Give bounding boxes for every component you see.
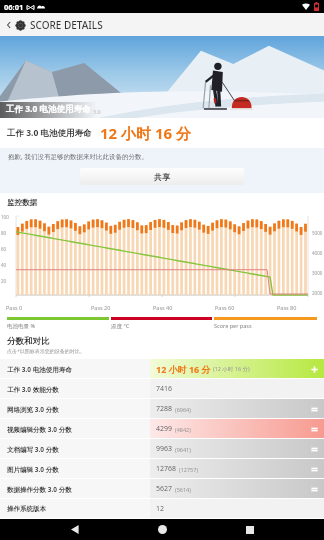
staticText: 点击+以图标表示您的设备的对比。 <box>7 348 85 355</box>
staticText: 4299 <box>156 424 173 434</box>
staticText: (6964) <box>175 406 191 413</box>
staticText: 12 <box>156 504 165 514</box>
staticText: 共享 <box>154 172 170 182</box>
staticText: 工作 3.0 电池使用寿命 <box>7 365 72 374</box>
staticText: 温度 °C <box>111 322 130 330</box>
staticText: (4842) <box>175 426 191 433</box>
button[interactable]: Compare <box>310 445 319 454</box>
staticText: 20 <box>1 278 7 284</box>
button[interactable]: 文档编写 3.0 分数 <box>0 439 324 459</box>
staticText: 分数和对比 <box>7 336 50 347</box>
button[interactable]: Compare <box>310 485 319 494</box>
staticText: 文档编写 3.0 分数 <box>7 445 59 454</box>
staticText: 100 <box>1 214 9 220</box>
staticText: Pass 20 <box>91 304 111 311</box>
button[interactable]: 图片编辑 3.0 分数 <box>0 459 324 479</box>
staticText: Pass 0 <box>6 304 23 311</box>
staticText: 40 <box>1 262 7 268</box>
button[interactable]: Back <box>3 19 15 31</box>
staticText: 网络浏览 3.0 分数 <box>7 405 59 414</box>
staticText: 12 小时 16 分 <box>100 123 192 143</box>
staticText: Pass 60 <box>215 304 235 311</box>
staticText: 7288 <box>156 404 173 414</box>
button[interactable]: 工作 3.0 电池使用寿命 <box>0 359 324 379</box>
button[interactable]: Compare <box>310 425 319 434</box>
staticText: 5000 <box>312 230 323 236</box>
staticText: 7416 <box>156 384 173 394</box>
staticText: 抱歉, 我们没有足够的数据来对比此设备的分数。 <box>8 152 148 161</box>
button[interactable]: Recent apps <box>237 519 263 540</box>
button[interactable]: 工作 3.0 效能分数 <box>0 379 324 399</box>
staticText: 视频编辑分数 3.0 分数 <box>7 425 72 434</box>
staticText: Score per pass <box>214 322 252 329</box>
staticText: 工作 3.0 电池使用寿命 <box>6 103 91 115</box>
staticText: (9641) <box>175 446 191 453</box>
button[interactable]: 共享 <box>80 168 244 185</box>
staticText: 工作 3.0 电池使用寿命 <box>7 127 92 139</box>
staticText: 5627 <box>156 484 173 494</box>
staticText: (5614) <box>175 486 191 493</box>
button[interactable]: 网络浏览 3.0 分数 <box>0 399 324 419</box>
button[interactable]: 视频编辑分数 3.0 分数 <box>0 419 324 439</box>
staticText: 60 <box>1 246 7 252</box>
staticText: 操作系统版本 <box>7 505 46 513</box>
staticText: 80 <box>1 230 7 236</box>
button[interactable]: Back <box>62 519 88 540</box>
staticText: 06:01 <box>4 2 24 12</box>
staticText: SCORE DETAILS <box>30 18 103 32</box>
staticText: 电池电量 % <box>7 322 36 330</box>
staticText: 12 小时 16 分 <box>156 363 211 375</box>
button[interactable]: Compare <box>310 465 319 474</box>
button[interactable]: Compare <box>310 365 319 374</box>
staticText: Pass 80 <box>277 304 297 311</box>
staticText: 12768 <box>156 464 177 474</box>
staticText: (12757) <box>179 466 199 473</box>
staticText: 2000 <box>312 290 323 296</box>
staticText: Pass 40 <box>153 304 173 311</box>
button[interactable]: 数据操作分数 3.0 分数 <box>0 479 324 499</box>
staticText: 监控数据 <box>7 198 37 207</box>
staticText: 3.0 <box>93 108 101 115</box>
button[interactable]: 操作系统版本 <box>0 499 324 519</box>
staticText: (12 小时 16 分) <box>213 365 250 373</box>
staticText: 3000 <box>312 270 323 276</box>
staticText: 图片编辑 3.0 分数 <box>7 465 59 474</box>
staticText: 工作 3.0 效能分数 <box>7 385 59 394</box>
staticText: 数据操作分数 3.0 分数 <box>7 485 72 494</box>
staticText: 9963 <box>156 444 173 454</box>
button[interactable]: Compare <box>310 405 319 414</box>
staticText: 4000 <box>312 250 323 256</box>
button[interactable]: Home <box>149 519 175 540</box>
